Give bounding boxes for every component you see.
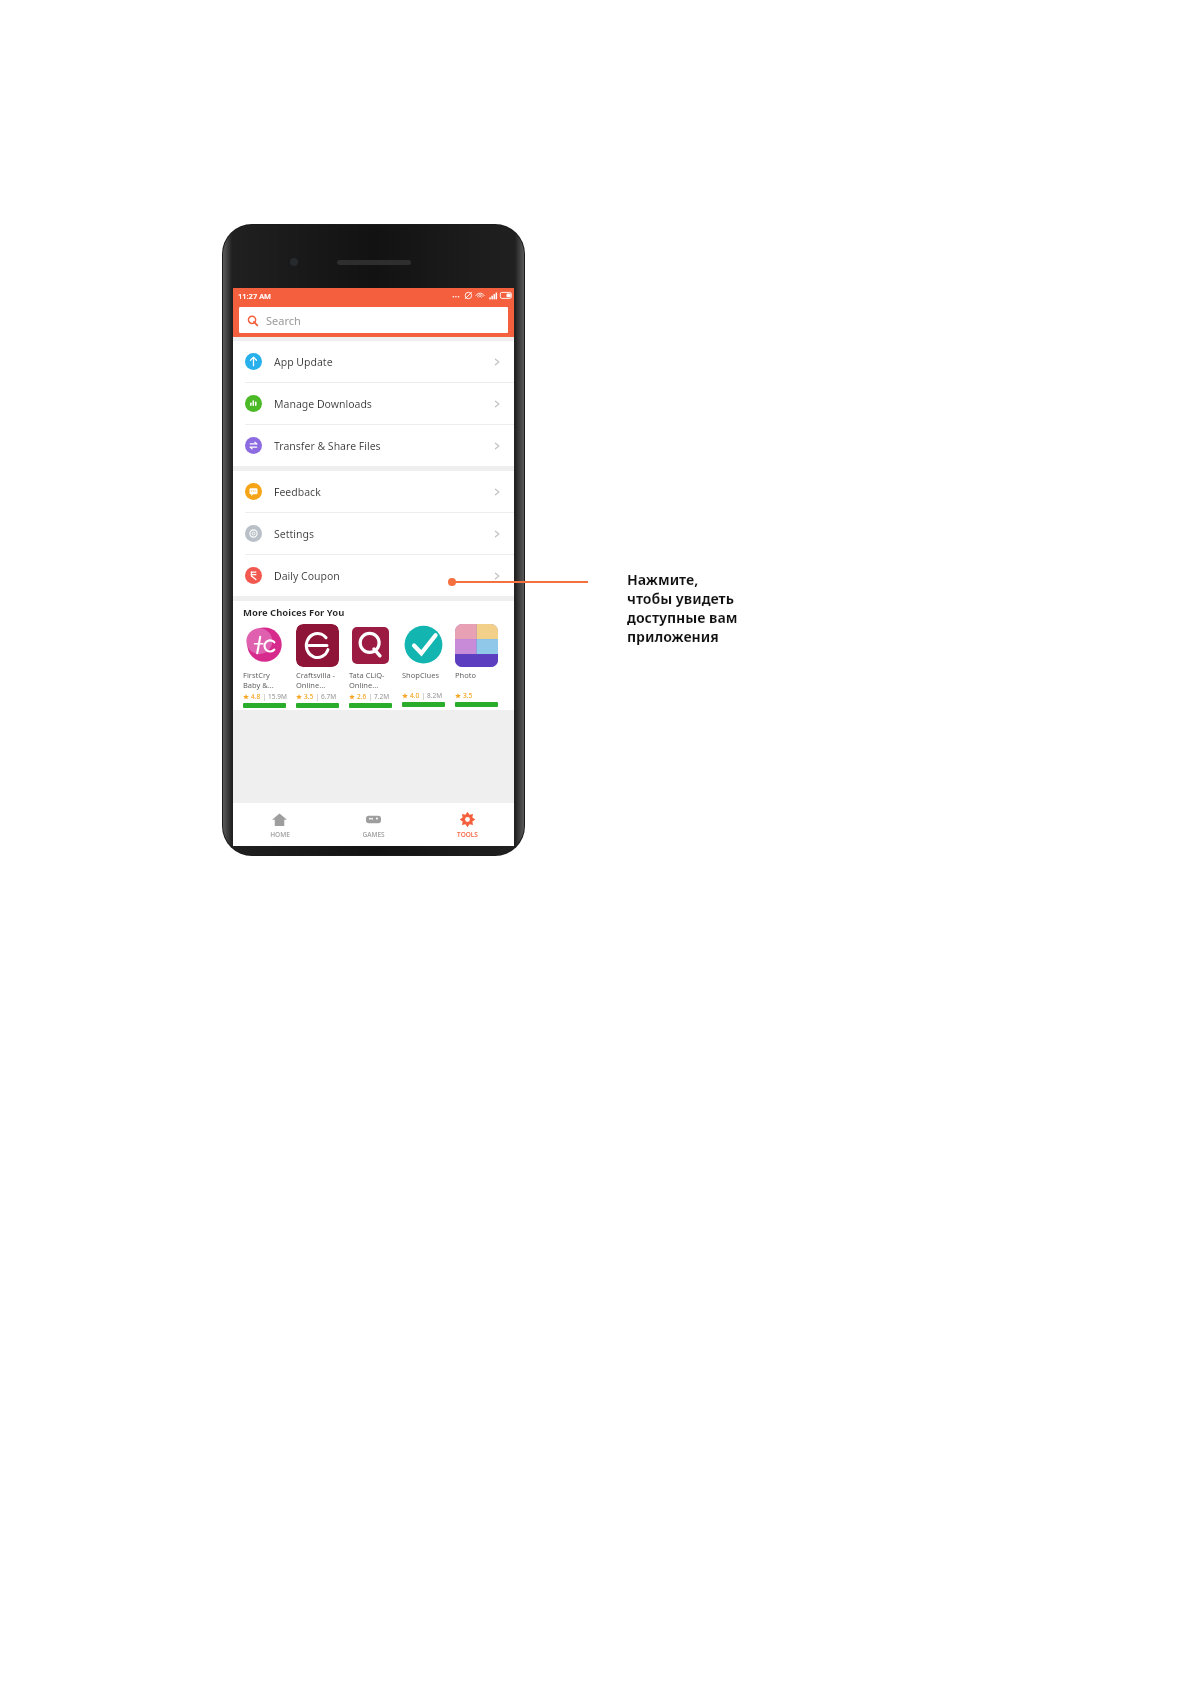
button[interactable]: GAMES (326, 803, 420, 846)
staticText: 6.7M (321, 692, 337, 701)
staticText: 2.6 (357, 692, 367, 701)
button[interactable]: Feedback (233, 471, 514, 512)
button[interactable]: ShopClues (402, 624, 455, 707)
staticText: Online... (296, 680, 326, 690)
staticText: | (367, 692, 374, 701)
staticText: Search (266, 313, 301, 328)
staticText: FirstCry (243, 670, 270, 680)
staticText: Нажмите, (627, 570, 699, 589)
staticText: Manage Downloads (274, 397, 372, 411)
button[interactable]: Search (239, 307, 508, 333)
button[interactable]: Craftsvilla - (296, 624, 349, 708)
staticText: HOME (270, 830, 290, 839)
staticText: App Update (274, 355, 333, 369)
staticText: 4.8 (251, 692, 261, 701)
staticText: 8.2M (427, 691, 443, 700)
staticText: 4.0 (410, 691, 420, 700)
staticText: Craftsvilla - (296, 670, 335, 680)
staticText: TOOLS (457, 830, 478, 839)
staticText: Settings (274, 527, 314, 541)
staticText: 3.5 (463, 691, 473, 700)
button[interactable]: Daily Coupon (233, 555, 514, 596)
staticText: 7.2M (374, 692, 390, 701)
button[interactable]: HOME (233, 803, 326, 846)
staticText: приложения (627, 627, 719, 646)
staticText: 3.5 (304, 692, 314, 701)
staticText: Daily Coupon (274, 569, 340, 583)
staticText: Photo (455, 670, 476, 680)
staticText: ShopClues (402, 670, 440, 680)
staticText: Transfer & Share Files (274, 439, 381, 453)
button[interactable]: Tata CLiQ- (349, 624, 402, 708)
button[interactable]: Settings (233, 513, 514, 554)
staticText: More Choices For You (243, 606, 345, 619)
button[interactable]: Photo (455, 624, 508, 707)
button[interactable]: FirstCry (243, 624, 296, 708)
button[interactable]: TOOLS (420, 803, 514, 846)
staticText: GAMES (362, 830, 385, 839)
staticText: 15.9M (268, 692, 287, 701)
staticText: | (420, 691, 427, 700)
button[interactable]: App Update (233, 341, 514, 382)
button[interactable]: Manage Downloads (233, 383, 514, 424)
staticText: Baby &... (243, 680, 274, 690)
staticText: 11:27 AM (238, 291, 271, 301)
staticText: чтобы увидеть (627, 589, 734, 608)
staticText: Online... (349, 680, 379, 690)
button[interactable]: Transfer & Share Files (233, 425, 514, 466)
staticText: | (314, 692, 321, 701)
staticText: | (261, 692, 268, 701)
staticText: доступные вам (627, 608, 738, 627)
staticText: Tata CLiQ- (349, 670, 385, 680)
staticText: Feedback (274, 485, 321, 499)
